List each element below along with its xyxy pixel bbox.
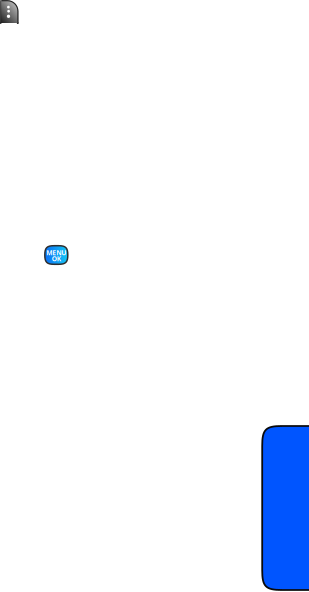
button[interactable]: More options [0, 0, 26, 28]
button[interactable]: Panel [262, 426, 309, 590]
button[interactable]: MENU [45, 246, 68, 264]
staticText: MENU [46, 248, 66, 257]
staticText: OK [52, 254, 61, 263]
